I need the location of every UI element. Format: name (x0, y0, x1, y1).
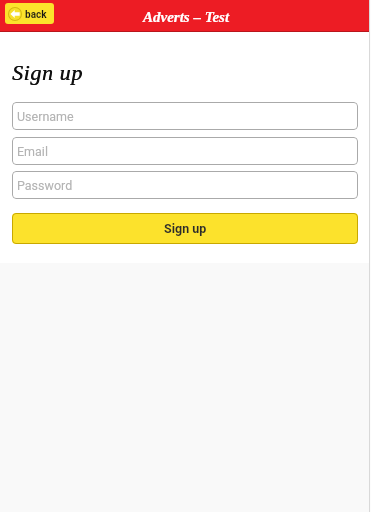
staticText: Username (17, 109, 74, 124)
staticText: back (25, 9, 47, 21)
button[interactable]: Username (12, 102, 358, 130)
staticText: Sign up (164, 221, 207, 236)
button[interactable]: Password (12, 171, 358, 199)
staticText: Email (17, 144, 48, 159)
staticText: Sign up (12, 60, 83, 84)
button[interactable]: Sign up (12, 213, 358, 244)
staticText: Adverts – Test (143, 9, 230, 26)
button[interactable]: Email (12, 137, 358, 165)
button[interactable]: back (5, 3, 54, 24)
staticText: Password (17, 178, 73, 193)
